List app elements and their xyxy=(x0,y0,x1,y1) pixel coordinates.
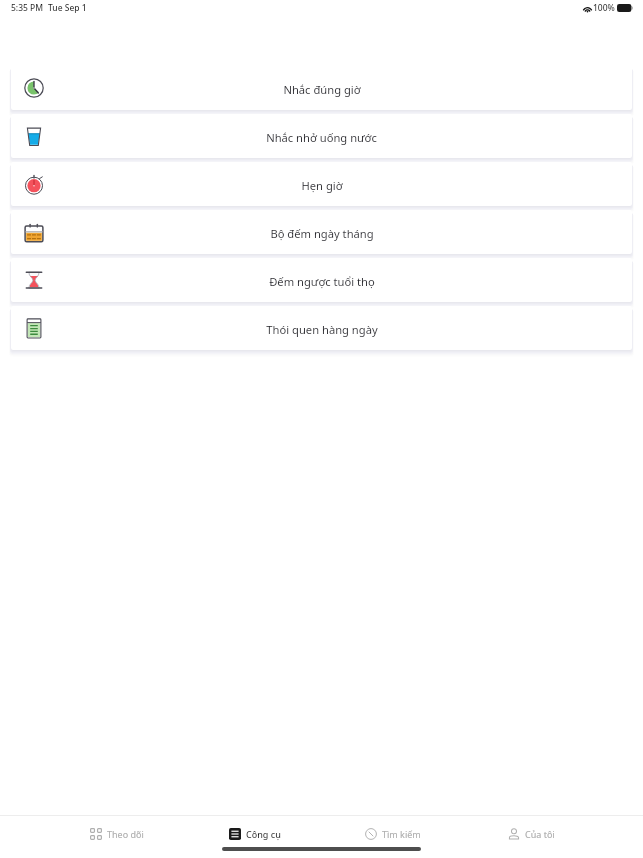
button[interactable]: Nhắc đúng giờ xyxy=(11,66,632,110)
staticText: Nhắc đúng giờ xyxy=(283,82,361,97)
staticText: Đếm ngược tuổi thọ xyxy=(269,274,375,289)
button[interactable]: Công cụ xyxy=(186,818,324,850)
staticText: Tìm kiếm xyxy=(382,828,421,840)
staticText: Của tôi xyxy=(525,828,555,840)
staticText: Công cụ xyxy=(246,828,281,840)
staticText: Hẹn giờ xyxy=(301,178,343,193)
staticText: Bộ đếm ngày tháng xyxy=(270,226,374,241)
staticText: Nhắc nhở uống nước xyxy=(266,130,377,145)
staticText: Tue Sep 1 xyxy=(48,2,87,14)
button[interactable]: Bộ đếm ngày tháng xyxy=(11,210,632,254)
button[interactable]: Đếm ngược tuổi thọ xyxy=(11,258,632,302)
button[interactable]: Hẹn giờ xyxy=(11,162,632,206)
button[interactable]: Thói quen hàng ngày xyxy=(11,306,632,350)
button[interactable]: Theo dõi xyxy=(48,818,186,850)
staticText: 5:35 PM xyxy=(11,2,44,14)
staticText: Thói quen hàng ngày xyxy=(266,322,378,337)
other: Battery full xyxy=(617,4,633,12)
button[interactable]: Tìm kiếm xyxy=(324,818,462,850)
staticText: Theo dõi xyxy=(107,828,144,840)
other: Wi-Fi xyxy=(583,5,592,12)
button[interactable]: Của tôi xyxy=(462,818,600,850)
button[interactable]: Nhắc nhở uống nước xyxy=(11,114,632,158)
staticText: 100% xyxy=(593,2,615,14)
